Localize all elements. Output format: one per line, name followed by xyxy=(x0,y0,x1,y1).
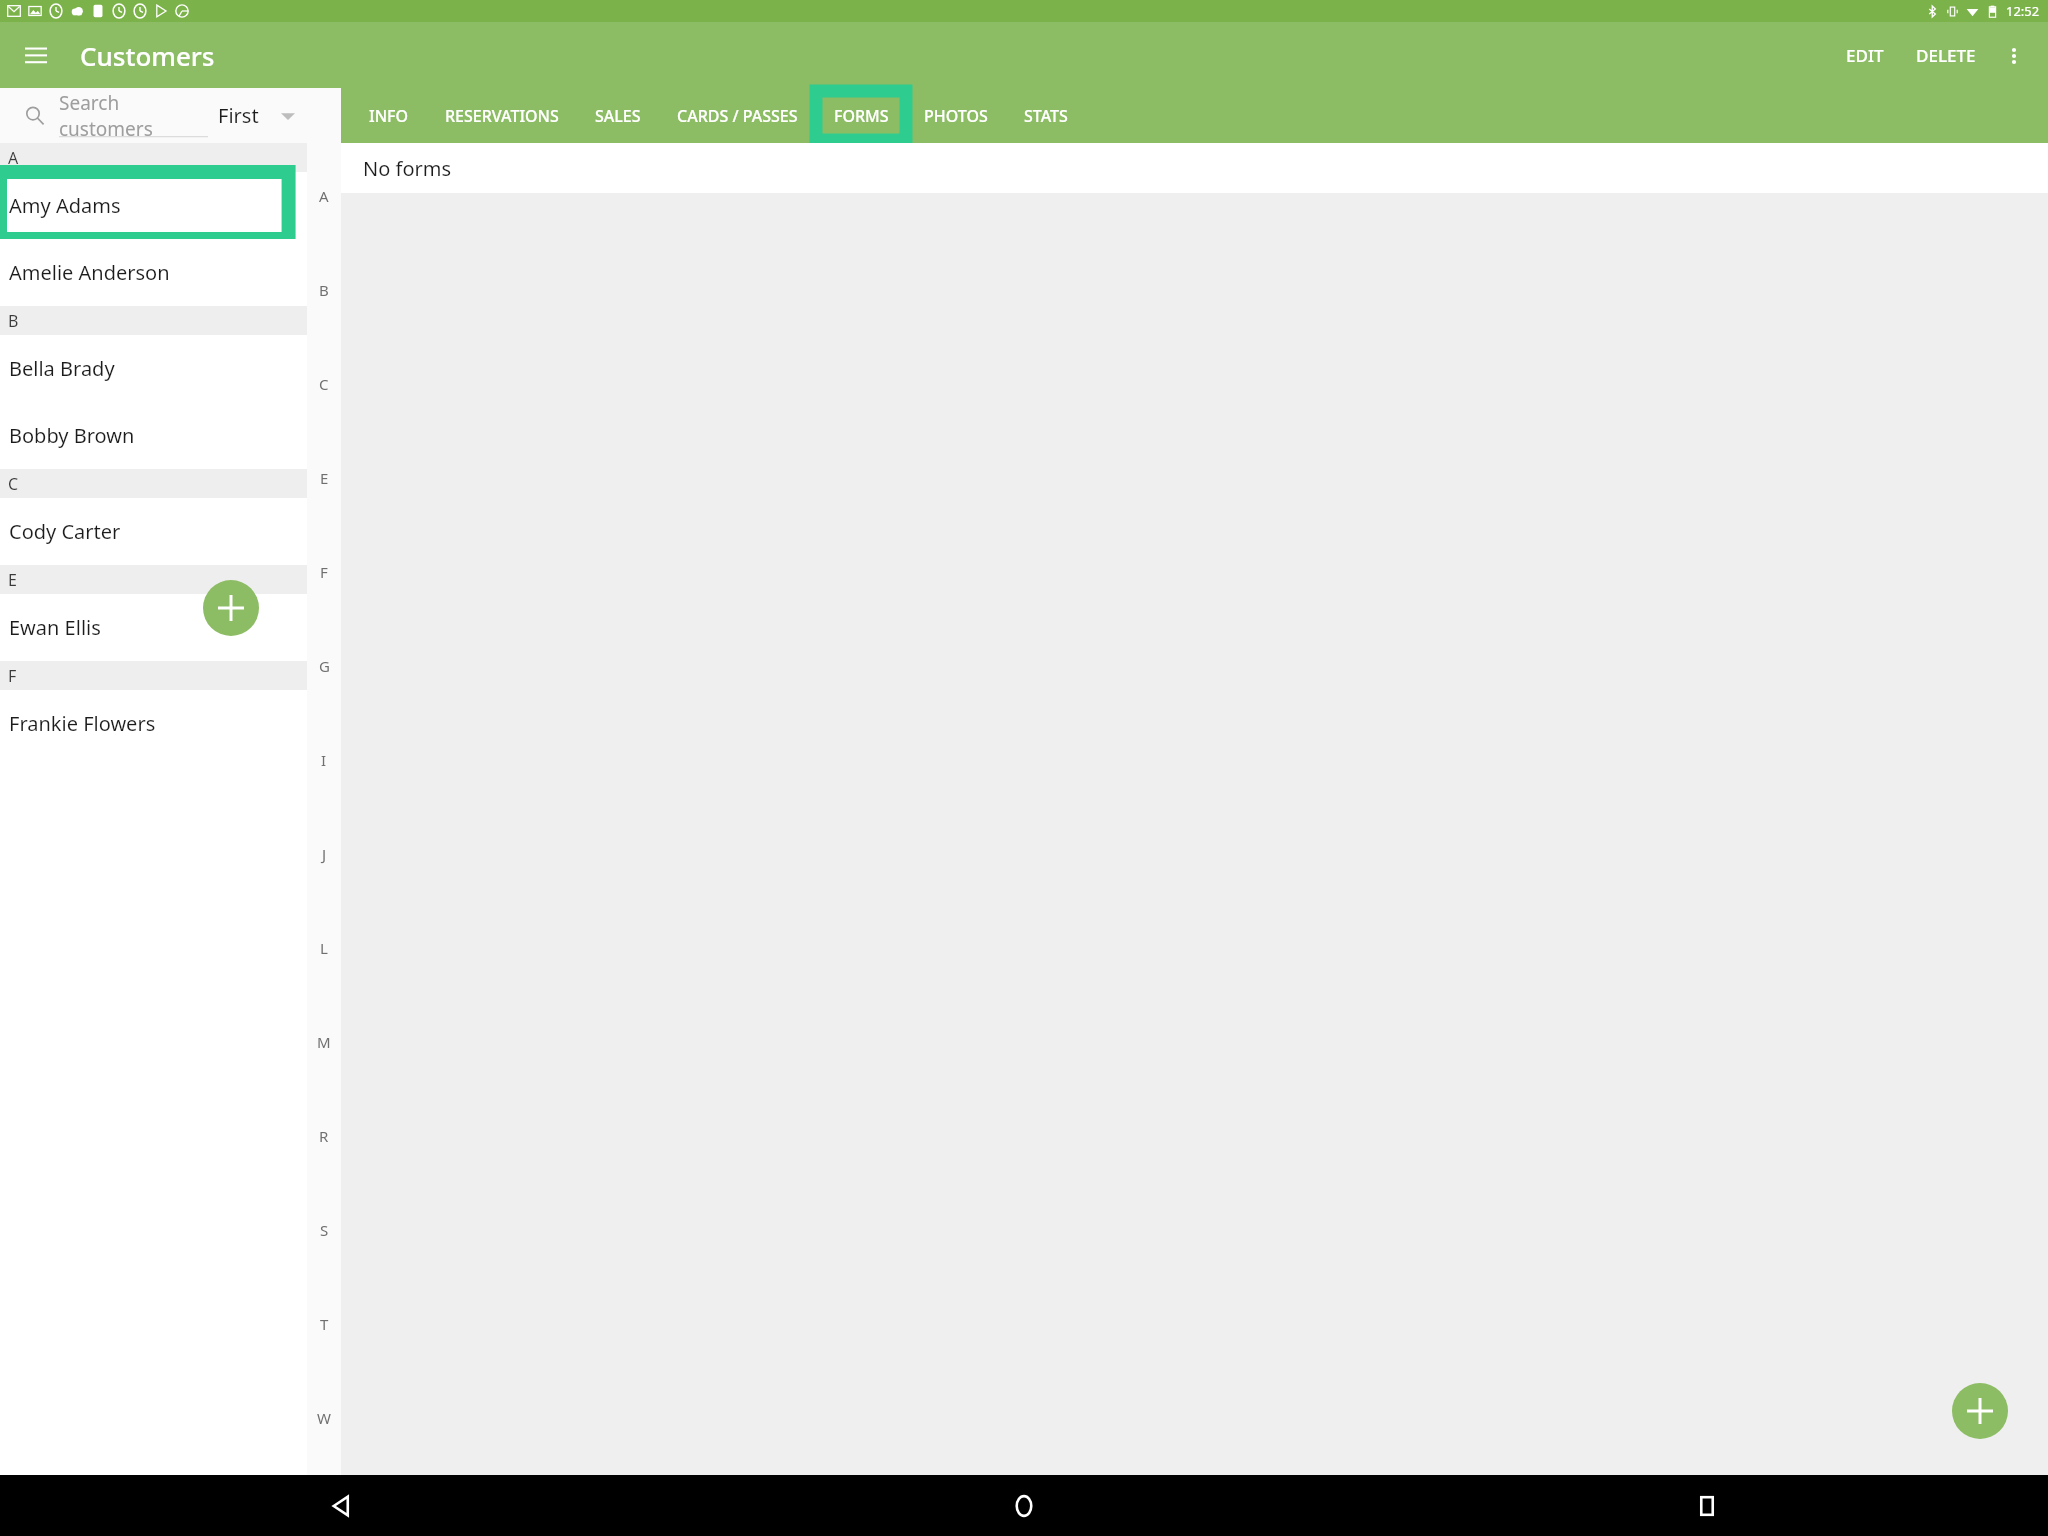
staticText: 12:52 xyxy=(2006,2,2040,20)
staticText: C xyxy=(8,473,19,495)
button[interactable]: INFO xyxy=(351,88,427,143)
button[interactable]: STATS xyxy=(1006,88,1086,143)
staticText: B xyxy=(319,280,329,300)
staticText: First xyxy=(218,102,259,129)
button[interactable]: L xyxy=(307,901,341,995)
staticText: F xyxy=(320,562,328,582)
button[interactable]: Bobby Brown xyxy=(0,402,307,469)
button[interactable]: SALES xyxy=(577,88,659,143)
staticText: T xyxy=(320,1314,329,1334)
button[interactable]: Search xyxy=(20,101,50,131)
staticText: PHOTOS xyxy=(924,105,988,127)
button[interactable]: S xyxy=(307,1183,341,1277)
button[interactable]: EDIT xyxy=(1830,30,1900,81)
button[interactable]: M xyxy=(307,995,341,1089)
button[interactable]: T xyxy=(307,1277,341,1371)
button[interactable]: Bella Brady xyxy=(0,335,307,402)
button[interactable]: E xyxy=(307,431,341,525)
staticText: Search customers xyxy=(59,90,208,142)
staticText: E xyxy=(8,569,17,591)
button[interactable]: A xyxy=(307,148,341,243)
button[interactable]: B xyxy=(307,243,341,337)
staticText: R xyxy=(319,1126,329,1146)
button[interactable]: First xyxy=(218,102,307,129)
staticText: G xyxy=(319,656,330,676)
staticText: L xyxy=(320,938,328,958)
staticText: FORMS xyxy=(834,105,889,127)
button[interactable]: Amelie Anderson xyxy=(0,239,307,306)
staticText: CARDS / PASSES xyxy=(677,105,798,127)
staticText: S xyxy=(320,1220,329,1240)
staticText: E xyxy=(320,468,329,488)
staticText: Bobby Brown xyxy=(9,422,135,449)
staticText: Amelie Anderson xyxy=(9,259,170,286)
staticText: INFO xyxy=(369,105,409,127)
button[interactable]: G xyxy=(307,619,341,713)
button[interactable]: F xyxy=(307,525,341,619)
staticText: Ewan Ellis xyxy=(9,614,101,641)
staticText: C xyxy=(319,374,329,394)
staticText: W xyxy=(317,1408,331,1428)
button[interactable]: DELETE xyxy=(1900,30,1992,81)
staticText: Cody Carter xyxy=(9,518,121,545)
staticText: J xyxy=(322,844,327,864)
button[interactable]: FORMS xyxy=(816,91,906,140)
button[interactable]: Back xyxy=(0,1475,682,1536)
staticText: F xyxy=(8,665,17,687)
staticText: M xyxy=(317,1032,331,1052)
button[interactable]: CARDS / PASSES xyxy=(659,88,816,143)
staticText: I xyxy=(321,750,327,770)
staticText: Bella Brady xyxy=(9,355,115,382)
button[interactable]: Add customer xyxy=(203,580,259,636)
button[interactable]: Home xyxy=(682,1475,1365,1536)
button[interactable]: Frankie Flowers xyxy=(0,690,307,757)
button[interactable]: Recent apps xyxy=(1365,1475,2048,1536)
button[interactable]: J xyxy=(307,807,341,901)
staticText: Customers xyxy=(80,38,215,73)
button[interactable]: Open navigation menu xyxy=(14,33,58,77)
staticText: Amy Adams xyxy=(9,192,121,219)
button[interactable]: Ewan Ellis xyxy=(0,594,307,661)
button[interactable]: RESERVATIONS xyxy=(427,88,577,143)
staticText: A xyxy=(8,147,19,169)
staticText: DELETE xyxy=(1916,44,1976,67)
button[interactable]: C xyxy=(307,337,341,431)
button[interactable]: W xyxy=(307,1371,341,1465)
button[interactable]: Amy Adams xyxy=(0,172,307,239)
button[interactable]: PHOTOS xyxy=(906,88,1006,143)
button[interactable]: More options xyxy=(1992,34,2036,78)
staticText: EDIT xyxy=(1846,44,1884,67)
staticText: RESERVATIONS xyxy=(445,105,559,127)
staticText: No forms xyxy=(363,155,452,182)
staticText: STATS xyxy=(1024,105,1068,127)
button[interactable]: R xyxy=(307,1089,341,1183)
staticText: SALES xyxy=(595,105,641,127)
staticText: B xyxy=(8,310,19,332)
staticText: Frankie Flowers xyxy=(9,710,156,737)
button[interactable]: Add form xyxy=(1952,1383,2008,1439)
staticText: A xyxy=(319,186,329,206)
button[interactable]: Search customers xyxy=(59,88,208,143)
button[interactable]: I xyxy=(307,713,341,807)
button[interactable]: Cody Carter xyxy=(0,498,307,565)
